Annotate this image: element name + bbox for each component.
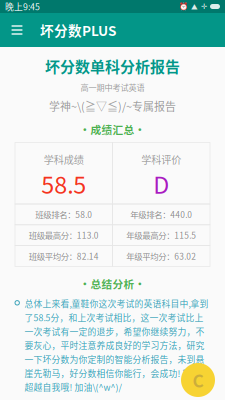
staticText: 坏分数单科分析报告 bbox=[45, 56, 180, 76]
staticText: C bbox=[192, 368, 203, 392]
staticText: D bbox=[153, 168, 169, 199]
staticText: 高一期中考试英语 bbox=[80, 82, 144, 93]
staticText: 坏分数PLUS bbox=[40, 21, 116, 39]
staticText: 班级排名：58.0 bbox=[35, 209, 92, 220]
staticText: 学科评价 bbox=[141, 152, 181, 166]
staticText: 班级最高分：113.0 bbox=[29, 230, 99, 241]
staticText: ·成绩汇总· bbox=[79, 122, 145, 136]
staticText: ·总结分析· bbox=[79, 276, 145, 291]
staticText: ⏰ bbox=[179, 2, 188, 10]
button[interactable]: Assistant bbox=[181, 363, 215, 397]
staticText: 晚上9:45 bbox=[5, 1, 40, 12]
staticText: ✛ bbox=[201, 2, 207, 10]
staticText: 58.5 bbox=[41, 168, 86, 199]
staticText: 年级最高分：115.5 bbox=[126, 230, 196, 241]
staticText: 年级排名：440.0 bbox=[130, 209, 192, 220]
staticText: 班级平均分：82.14 bbox=[29, 250, 99, 262]
staticText: 学科成绩 bbox=[44, 152, 84, 166]
staticText: ▲ bbox=[191, 2, 198, 11]
staticText: 学神~\(≧▽≦)/~专属报告 bbox=[49, 99, 176, 113]
staticText: 年级平均分：63.02 bbox=[126, 250, 196, 262]
staticText: 总体上来看,童鞋你这次考试的英语科目中,拿到了58.5分，和上次考试相比，这一次… bbox=[24, 298, 209, 393]
button[interactable]: Menu bbox=[0, 13, 34, 47]
